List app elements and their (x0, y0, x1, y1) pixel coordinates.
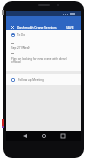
button[interactable]: Follow up Meeting (11, 74, 81, 85)
button[interactable] (23, 134, 27, 138)
staticText: To Do (17, 33, 26, 37)
staticText: offload (11, 60, 21, 64)
staticText: Dashmukh Crane Services (17, 26, 57, 30)
staticText: Plan on looking for new crane with diese… (11, 57, 67, 61)
staticText: Follow up Meeting (18, 78, 44, 82)
button[interactable] (61, 134, 65, 138)
button[interactable]: To Do (11, 32, 81, 38)
staticText: SAVE (66, 26, 74, 30)
button[interactable]: SAVE (66, 26, 74, 30)
button[interactable] (11, 26, 14, 29)
button[interactable] (42, 134, 46, 138)
staticText: Sep 27 (Wed) (11, 46, 30, 50)
